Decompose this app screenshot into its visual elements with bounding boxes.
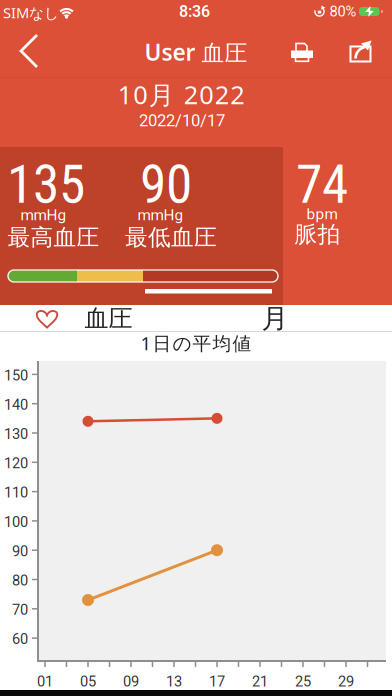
button[interactable]: 血圧	[35, 305, 132, 331]
button[interactable]: Share	[338, 30, 382, 74]
staticText: 2022/10/17	[139, 111, 225, 130]
staticText: 80	[12, 572, 28, 589]
staticText: 29	[338, 673, 354, 690]
staticText: 150	[4, 367, 28, 384]
staticText: 135	[7, 153, 85, 216]
staticText: 09	[123, 673, 139, 690]
staticText: 70	[12, 601, 28, 618]
staticText: 01	[37, 673, 53, 690]
staticText: 60	[12, 630, 28, 648]
staticText: 90	[12, 543, 28, 560]
staticText: 130	[4, 425, 28, 443]
staticText: SIMなし	[3, 3, 59, 22]
staticText: 120	[4, 455, 28, 472]
staticText: 90	[140, 153, 192, 216]
button[interactable]: Back	[6, 29, 50, 73]
staticText: mmHg	[20, 206, 66, 224]
staticText: 17	[209, 673, 225, 690]
staticText: 最高血圧	[7, 224, 99, 251]
staticText: 13	[166, 673, 182, 690]
staticText: 80%	[329, 3, 356, 20]
staticText: 最低血圧	[125, 224, 217, 251]
staticText: 110	[4, 484, 28, 501]
staticText: 8:36	[179, 2, 210, 21]
staticText: 21	[252, 673, 268, 690]
button[interactable]: 月	[253, 305, 297, 331]
staticText: 100	[4, 513, 28, 530]
staticText: 1日の平均値	[140, 331, 251, 355]
staticText: 25	[295, 673, 311, 690]
button[interactable]: Print	[280, 30, 324, 74]
staticText: 血圧	[84, 304, 132, 333]
staticText: bpm	[306, 205, 337, 223]
staticText: 月	[261, 302, 288, 335]
staticText: 05	[80, 673, 96, 690]
staticText: 74	[296, 153, 348, 216]
staticText: 10月 2022	[118, 78, 244, 111]
staticText: User 血圧	[144, 37, 247, 67]
staticText: 140	[4, 396, 28, 413]
staticText: mmHg	[137, 206, 183, 224]
staticText: 脈拍	[294, 221, 340, 248]
